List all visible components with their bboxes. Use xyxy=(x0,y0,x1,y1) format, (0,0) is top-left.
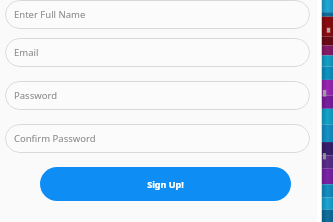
other: Next page preview xyxy=(317,0,333,222)
button[interactable]: Enter Full Name xyxy=(5,0,310,29)
staticText: Sign Up! xyxy=(147,178,184,190)
button[interactable]: Confirm Password xyxy=(5,124,310,153)
button[interactable]: Email xyxy=(5,38,310,67)
button[interactable]: Password xyxy=(5,81,310,110)
staticText: Confirm Password xyxy=(14,132,96,145)
staticText: Enter Full Name xyxy=(14,8,86,21)
button[interactable]: Sign Up! xyxy=(40,167,291,201)
staticText: Password xyxy=(14,89,57,102)
staticText: Email xyxy=(14,46,39,59)
